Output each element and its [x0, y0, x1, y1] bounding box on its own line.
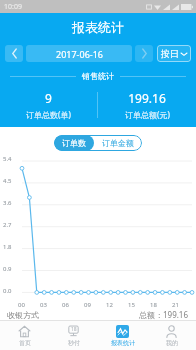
staticText: 报表统计: [111, 339, 135, 347]
staticText: 秒付: [68, 339, 80, 347]
button[interactable]: 我的: [147, 321, 196, 350]
button[interactable]: 2017-06-16: [26, 45, 132, 62]
staticText: 我的: [166, 339, 178, 347]
staticText: 09: [84, 301, 91, 309]
staticText: 5.4: [3, 155, 12, 163]
staticText: 199.16: [128, 90, 166, 106]
staticText: 15: [128, 301, 135, 309]
staticText: 06: [62, 301, 69, 309]
staticText: 4.5: [3, 177, 12, 185]
staticText: 订单总数(单): [26, 109, 71, 120]
staticText: 收银方式: [7, 310, 39, 320]
button[interactable]: Previous day: [5, 45, 23, 62]
button[interactable]: 按日: [157, 45, 191, 62]
staticText: 10:09: [4, 2, 22, 12]
staticText: 按日: [161, 48, 179, 59]
staticText: 03: [40, 301, 47, 309]
staticText: 9: [45, 90, 52, 106]
button[interactable]: 订单金额: [94, 135, 142, 151]
staticText: 订单金额: [102, 138, 134, 148]
staticText: 报表统计: [72, 19, 124, 35]
staticText: 00: [18, 301, 25, 309]
staticText: 12: [106, 301, 113, 309]
button[interactable]: 首页: [0, 321, 49, 350]
staticText: 18: [71, 326, 77, 333]
button[interactable]: 报表统计: [98, 321, 147, 350]
button[interactable]: Next day: [135, 45, 153, 62]
staticText: 订单总额(元): [125, 109, 170, 120]
button[interactable]: 199.16: [98, 90, 196, 120]
button[interactable]: 秒付: [49, 321, 98, 350]
button[interactable]: 订单数: [54, 135, 94, 151]
staticText: 0.9: [3, 265, 12, 273]
staticText: 订单数: [62, 138, 86, 148]
staticText: 21: [172, 301, 179, 309]
staticText: 2017-06-16: [56, 48, 103, 60]
staticText: 1.8: [3, 243, 12, 251]
staticText: 首页: [19, 339, 31, 347]
staticText: 0.0: [3, 287, 12, 295]
button[interactable]: 9: [0, 90, 97, 120]
button[interactable]: 收银方式: [0, 309, 196, 320]
staticText: 18: [150, 301, 157, 309]
staticText: 总额：199.16: [139, 309, 189, 320]
staticText: 销售统计: [82, 71, 114, 81]
staticText: 3.6: [3, 199, 12, 207]
staticText: 2.7: [3, 221, 12, 229]
